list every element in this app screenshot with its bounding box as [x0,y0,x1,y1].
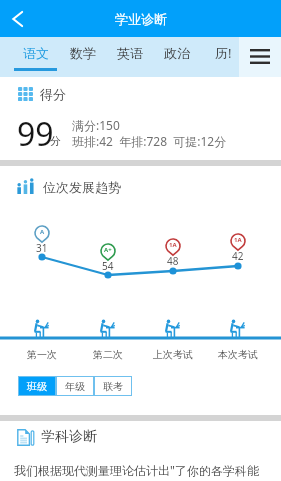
button[interactable]: 班级 [18,376,56,396]
button[interactable]: 联考 [94,376,132,396]
staticText: 位次发展趋势 [43,179,121,195]
staticText: 1A [169,241,177,249]
staticText: 99 [17,112,54,156]
button[interactable]: 历! [200,37,247,77]
button[interactable]: 语文 [12,37,59,77]
staticText: 学业诊断 [115,11,167,27]
button[interactable]: 数学 [59,37,106,77]
staticText: A+ [104,246,112,254]
staticText: 年级 [65,380,85,393]
staticText: 班级 [27,380,47,393]
staticText: 满分:150 [72,117,120,133]
staticText: 政治 [164,45,190,61]
staticText: 第一次 [27,348,57,361]
staticText: 分 [50,134,61,148]
staticText: 本次考试 [218,348,258,361]
staticText: 英语 [117,45,143,61]
staticText: 联考 [103,380,123,393]
staticText: 数学 [70,45,96,61]
staticText: 31 [36,241,48,255]
button[interactable]: 英语 [106,37,153,77]
staticText: 1A [234,236,242,244]
staticText: 42 [232,249,244,263]
staticText: 语文 [23,45,49,61]
staticText: 54 [102,259,114,273]
button[interactable]: Back [0,0,34,37]
staticText: 我们根据现代测量理论估计出"了你的各学科能 [14,462,259,478]
button[interactable]: 政治 [153,37,200,77]
staticText: 上次考试 [153,348,193,361]
button[interactable]: 年级 [56,376,94,396]
staticText: 历! [215,44,232,62]
staticText: 第二次 [93,348,123,361]
staticText: 学科诊断 [41,428,97,446]
button[interactable]: Menu [239,37,281,77]
staticText: 得分 [40,86,66,102]
staticText: A [40,228,45,236]
staticText: 48 [167,254,179,268]
staticText: 班排:42 年排:728 可提:12分 [72,133,227,149]
